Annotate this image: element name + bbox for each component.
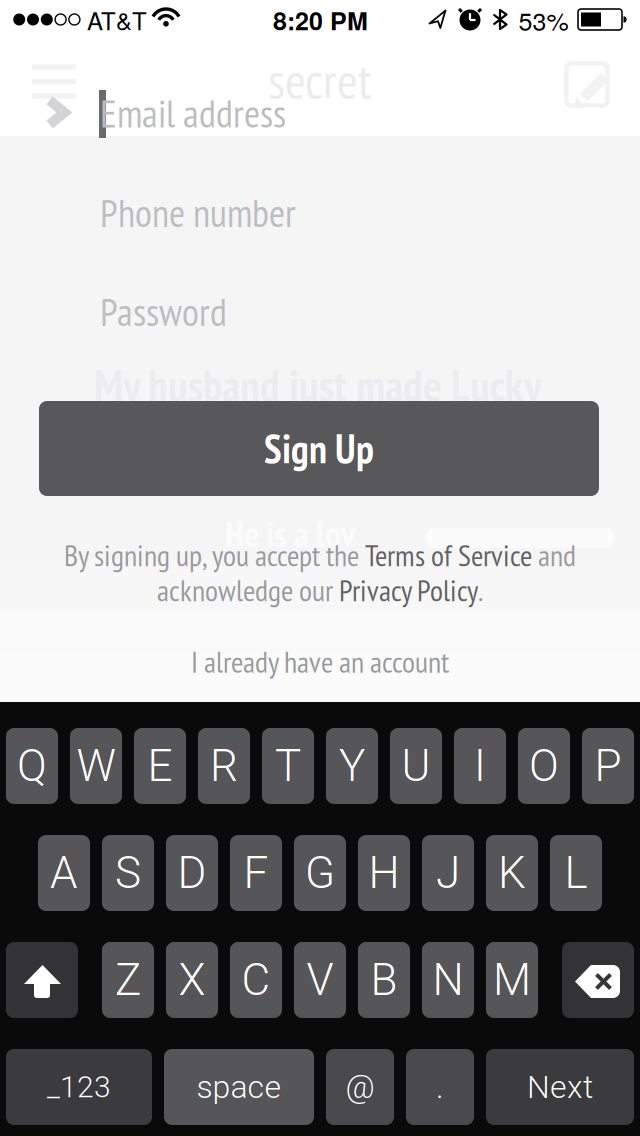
button[interactable]: K (486, 835, 538, 911)
button[interactable]: @ (326, 1049, 394, 1125)
button[interactable]: I (454, 728, 506, 804)
button[interactable]: D (166, 835, 218, 911)
staticText: Terms of Service (365, 536, 532, 574)
staticText: I already have an account (191, 642, 449, 681)
staticText: . (478, 571, 483, 609)
staticText: Email address (100, 88, 286, 138)
staticText: Privacy Policy (339, 571, 478, 609)
button[interactable]: C (230, 942, 282, 1018)
button[interactable]: Next (486, 1049, 634, 1125)
staticText: 53% (518, 2, 568, 38)
button[interactable]: I already have an account (120, 639, 520, 683)
button[interactable]: Terms of Service (365, 536, 532, 574)
staticText: C (241, 954, 270, 1006)
staticText: D (177, 847, 206, 899)
staticText: 8:20 PM (273, 2, 368, 38)
button[interactable]: Email address (0, 65, 640, 161)
button[interactable]: X (166, 942, 218, 1018)
staticText: U (401, 740, 430, 792)
button[interactable]: . (406, 1049, 474, 1125)
staticText: @ (345, 1068, 374, 1106)
button[interactable]: G (294, 835, 346, 911)
staticText: Z (115, 954, 141, 1006)
staticText: O (529, 740, 559, 792)
staticText: W (76, 740, 115, 792)
staticText: M (493, 954, 531, 1006)
button[interactable]: Q (6, 728, 58, 804)
staticText: H (368, 847, 399, 899)
staticText: A (50, 847, 78, 899)
button[interactable]: F (230, 835, 282, 911)
staticText: By signing up, you accept the (64, 536, 365, 574)
button[interactable]: S (102, 835, 154, 911)
button[interactable]: Phone number (0, 164, 640, 260)
staticText: Phone number (100, 187, 296, 238)
staticText: _123 (47, 1069, 111, 1105)
button[interactable]: U (390, 728, 442, 804)
staticText: V (306, 954, 333, 1006)
staticText: AT&T (87, 3, 147, 37)
button[interactable]: M (486, 942, 538, 1018)
button[interactable]: A (38, 835, 90, 911)
staticText: B (370, 954, 397, 1006)
staticText: E (147, 740, 172, 792)
staticText: Q (17, 740, 47, 792)
button[interactable]: Y (326, 728, 378, 804)
staticText: J (436, 847, 460, 899)
button[interactable]: O (518, 728, 570, 804)
staticText: acknowledge our (157, 571, 339, 609)
staticText: L (564, 847, 587, 899)
button[interactable]: R (198, 728, 250, 804)
button[interactable]: Privacy Policy (339, 571, 478, 609)
staticText: X (178, 954, 205, 1006)
button[interactable]: Z (102, 942, 154, 1018)
staticText: He is a lov (225, 511, 355, 557)
staticText: Next (527, 1068, 593, 1106)
button[interactable]: P (582, 728, 634, 804)
button[interactable]: H (358, 835, 410, 911)
staticText: Password (100, 286, 227, 337)
staticText: My husband just made Lucky (94, 356, 542, 413)
button[interactable]: W (70, 728, 122, 804)
staticText: G (305, 847, 335, 899)
staticText: P (594, 740, 621, 792)
button[interactable]: B (358, 942, 410, 1018)
staticText: F (243, 847, 268, 899)
staticText: N (432, 954, 463, 1006)
button[interactable]: T (262, 728, 314, 804)
button[interactable]: V (294, 942, 346, 1018)
staticText: Sign Up (264, 423, 374, 474)
staticText: I (474, 740, 486, 792)
button[interactable]: L (550, 835, 602, 911)
button[interactable]: J (422, 835, 474, 911)
button[interactable]: Shift (6, 942, 78, 1018)
button[interactable]: space (164, 1049, 314, 1125)
staticText: space (196, 1068, 281, 1106)
staticText: S (115, 847, 141, 899)
button[interactable]: E (134, 728, 186, 804)
staticText: secret (268, 48, 372, 112)
staticText: Y (339, 740, 365, 792)
staticText: K (498, 847, 526, 899)
button[interactable]: Password (0, 263, 640, 359)
staticText: and (532, 536, 576, 574)
button[interactable]: Sign Up (39, 401, 599, 496)
button[interactable]: Delete (562, 942, 634, 1018)
staticText: T (275, 740, 301, 792)
button[interactable]: N (422, 942, 474, 1018)
staticText: . (436, 1068, 444, 1106)
staticText: R (210, 740, 238, 792)
button[interactable]: _123 (6, 1049, 152, 1125)
